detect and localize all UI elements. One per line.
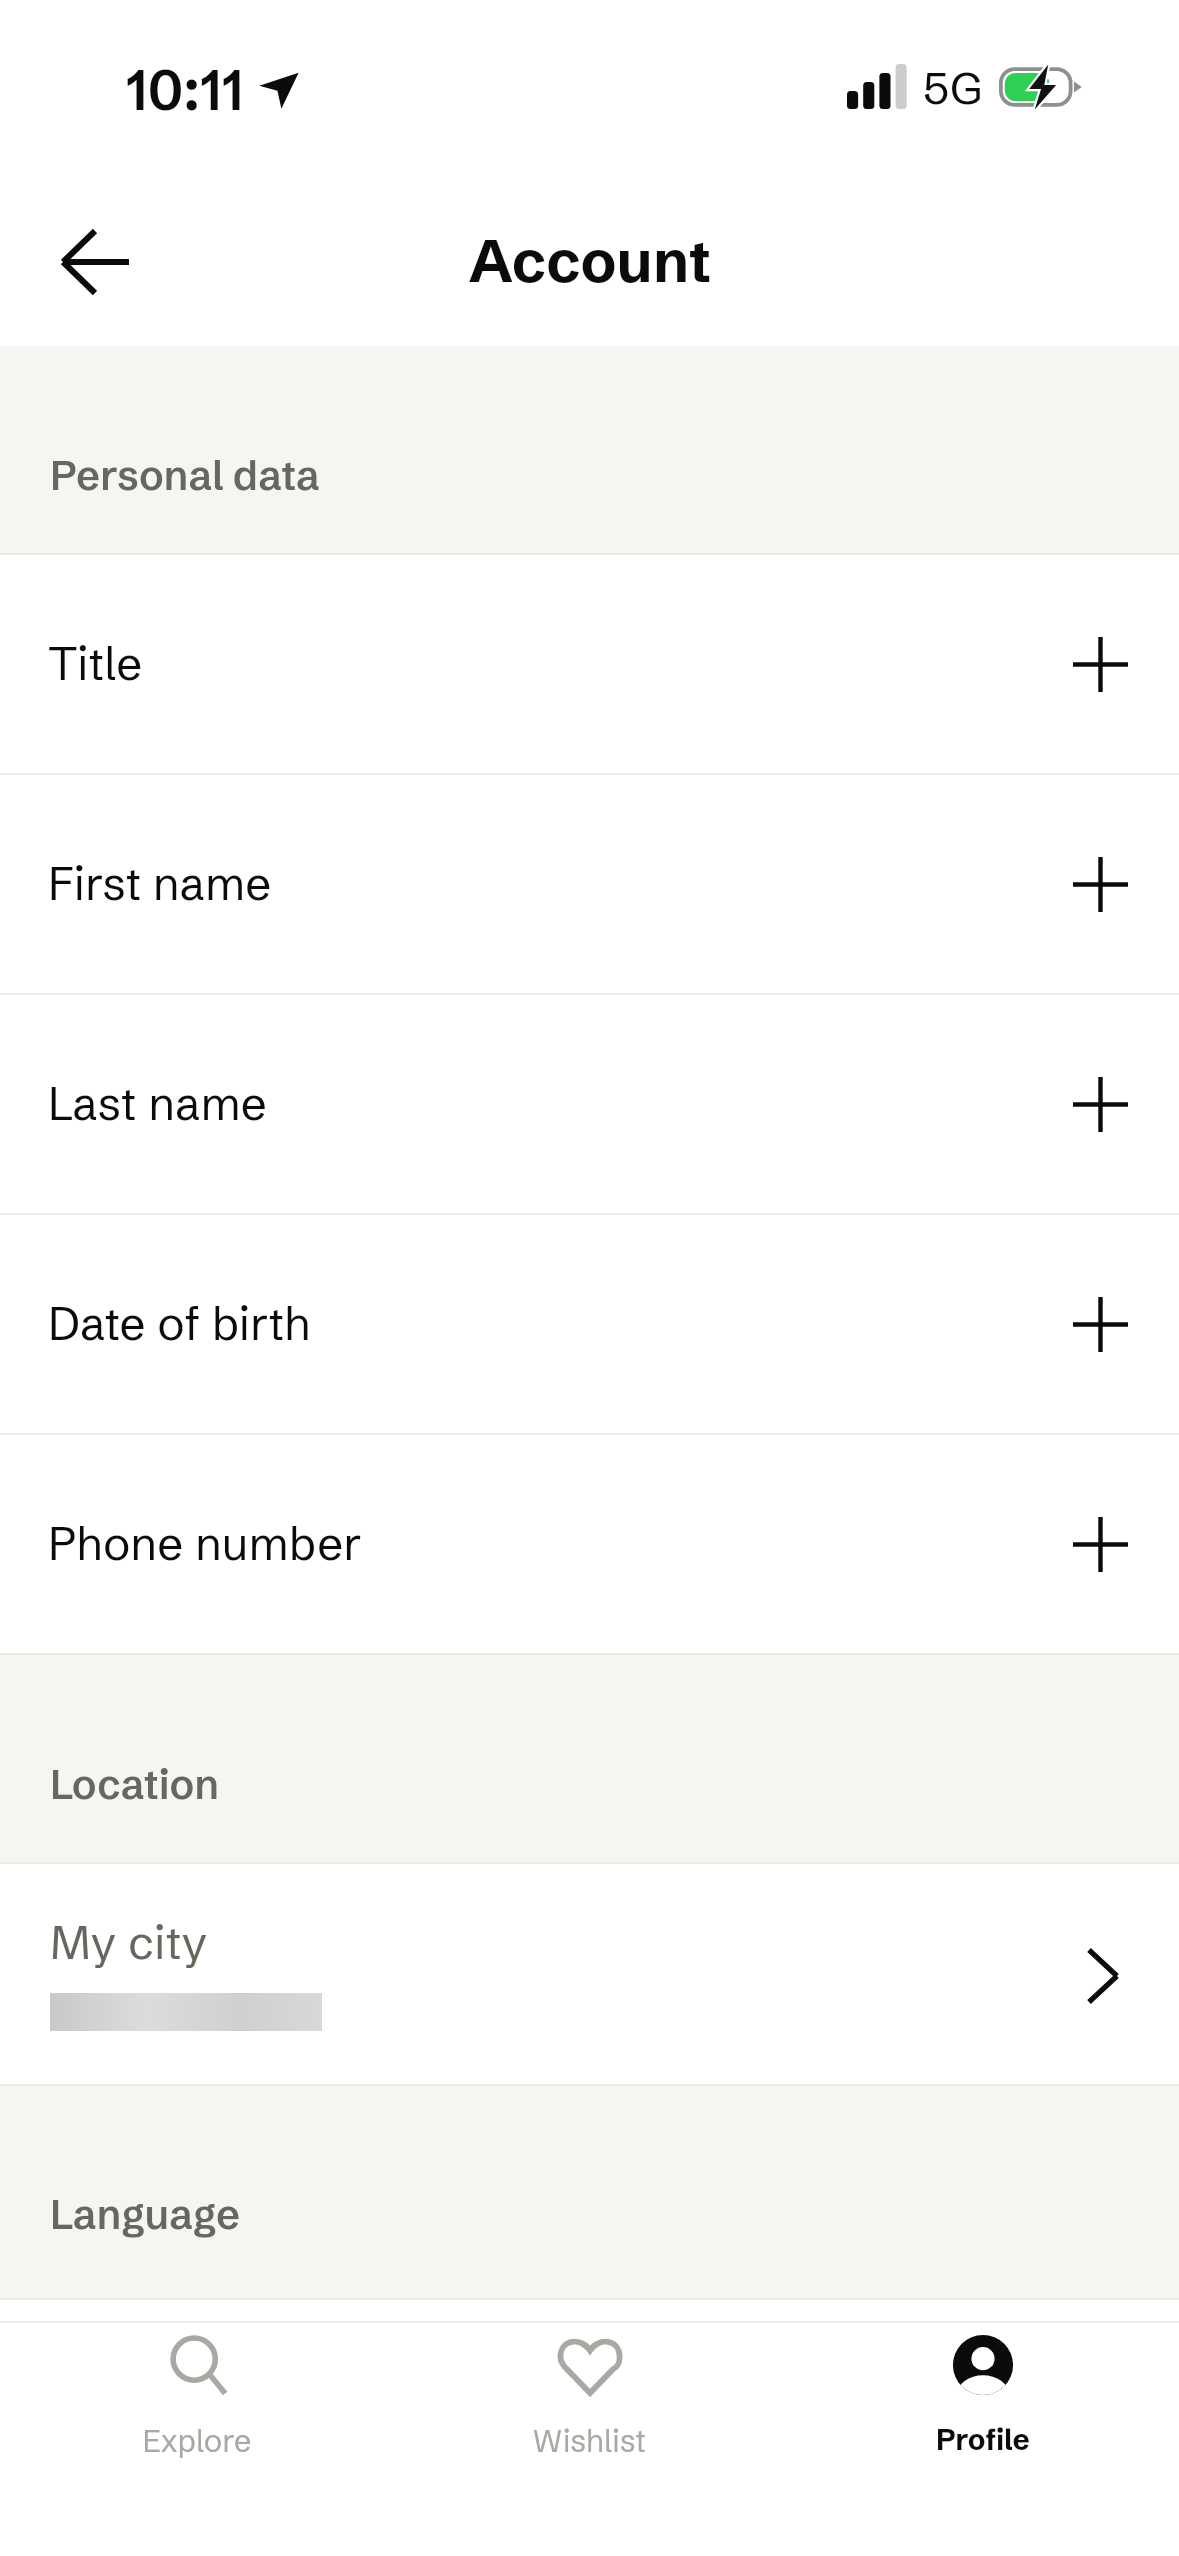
staticText: Personal data [50,450,320,501]
button[interactable]: First name [0,775,1179,993]
button[interactable]: Explore [0,2323,393,2556]
button[interactable]: Wishlist [393,2323,786,2556]
button[interactable]: Back [36,203,154,321]
button[interactable]: Phone number [0,1435,1179,1653]
staticText: Title [48,635,143,692]
staticText: 5G [923,60,983,116]
staticText: Location [50,1759,219,1810]
staticText: Last name [48,1075,267,1132]
staticText: First name [48,855,272,912]
button[interactable]: Profile [786,2323,1179,2556]
staticText: Phone number [48,1515,362,1572]
button[interactable]: My city [0,1864,1179,2084]
staticText: Date of birth [48,1295,311,1352]
staticText: Explore [142,2422,252,2460]
staticText: Account [469,224,712,297]
staticText: Language [50,2189,241,2240]
button[interactable]: Date of birth [0,1215,1179,1433]
staticText: 10:11 [126,54,244,124]
staticText: Profile [936,2422,1030,2458]
button[interactable]: Title [0,555,1179,773]
staticText: My city [50,1913,208,1971]
staticText: Wishlist [533,2422,646,2460]
button[interactable]: Last name [0,995,1179,1213]
